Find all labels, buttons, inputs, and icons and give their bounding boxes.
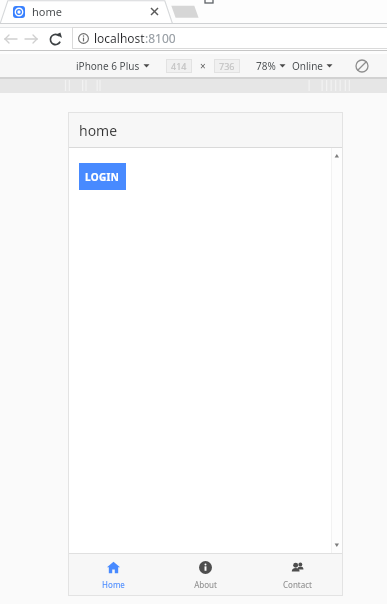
button[interactable]: 78% xyxy=(256,54,286,77)
staticText: × xyxy=(200,59,206,73)
button[interactable]: Close tab xyxy=(146,0,162,23)
button[interactable]: 414 xyxy=(166,59,192,73)
button[interactable]: 736 xyxy=(214,59,240,73)
staticText: Online xyxy=(292,59,323,73)
button[interactable]: LOGIN xyxy=(79,163,126,190)
button[interactable]: Home xyxy=(68,554,159,596)
button[interactable]: localhost xyxy=(72,27,387,49)
staticText: home xyxy=(79,121,118,140)
button[interactable]: Contact xyxy=(251,554,343,596)
button[interactable]: Forward xyxy=(21,28,41,50)
staticText: LOGIN xyxy=(85,170,120,184)
staticText: Contact xyxy=(283,579,312,590)
staticText: 736 xyxy=(219,60,235,72)
staticText: 78% xyxy=(256,59,276,73)
staticText: localhost xyxy=(94,30,145,46)
button[interactable]: home xyxy=(4,0,146,23)
button[interactable]: iPhone 6 Plus xyxy=(76,54,150,77)
button[interactable]: About xyxy=(159,554,251,596)
button[interactable]: Back xyxy=(1,28,21,50)
staticText: home xyxy=(32,4,62,19)
staticText: Home xyxy=(102,579,125,590)
button[interactable]: Throttling xyxy=(350,54,373,77)
staticText: About xyxy=(194,579,217,590)
button[interactable]: Online xyxy=(292,54,333,77)
staticText: iPhone 6 Plus xyxy=(76,59,140,73)
button[interactable]: Reload xyxy=(45,28,65,50)
staticText: 414 xyxy=(171,60,187,72)
staticText: :8100 xyxy=(145,30,176,46)
